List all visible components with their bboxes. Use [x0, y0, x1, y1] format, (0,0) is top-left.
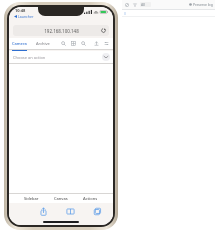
- button[interactable]: Preserve log: [189, 2, 213, 7]
- button[interactable]: Grid view: [70, 40, 77, 47]
- staticText: Preserve log: [193, 2, 213, 7]
- staticText: Sidebar: [24, 196, 39, 201]
- button[interactable]: Upload: [93, 40, 100, 47]
- button[interactable]: Reload: [100, 27, 107, 34]
- staticText: Archive: [36, 41, 50, 46]
- button[interactable]: Search: [60, 40, 67, 47]
- button[interactable]: Settings: [103, 40, 110, 47]
- button[interactable]: Archive: [36, 41, 50, 46]
- staticText: Actions: [83, 196, 98, 201]
- staticText: Canvas: [54, 196, 68, 201]
- button[interactable]: Bookmarks: [64, 205, 76, 217]
- button[interactable]: Tabs: [91, 205, 103, 217]
- button[interactable]: 192.168.100.148: [13, 25, 109, 36]
- button[interactable]: Camera: [12, 41, 27, 46]
- button[interactable]: Canvas: [54, 196, 68, 201]
- staticText: Launcher: [18, 14, 34, 19]
- staticText: Choose an action: [13, 55, 46, 60]
- button[interactable]: Zoom: [80, 40, 87, 47]
- button[interactable]: Share: [37, 205, 49, 217]
- staticText: 192.168.100.148: [44, 28, 79, 34]
- staticText: All: [141, 2, 146, 7]
- staticText: 10:48: [15, 8, 26, 13]
- button[interactable]: Choose an action: [9, 51, 113, 63]
- button[interactable]: Clear console: [124, 2, 130, 8]
- button[interactable]: All: [140, 2, 151, 7]
- button[interactable]: Filter: [132, 2, 138, 8]
- button[interactable]: Actions: [83, 196, 98, 201]
- button[interactable]: Sidebar: [24, 196, 39, 201]
- staticText: Camera: [12, 41, 27, 46]
